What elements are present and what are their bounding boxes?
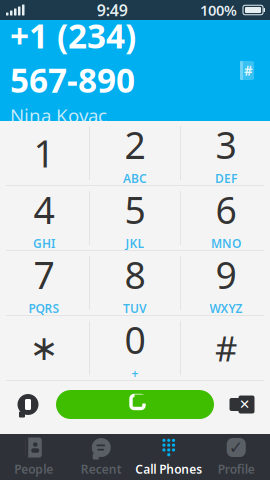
button[interactable]: Contacts — [232, 53, 262, 87]
button[interactable]: People — [0, 434, 67, 480]
staticText: DEF — [215, 170, 237, 186]
staticText: People — [14, 461, 53, 477]
staticText: Profile — [218, 461, 255, 477]
staticText: ∗ — [29, 328, 58, 368]
staticText: 7 — [33, 250, 54, 299]
staticText: GHI — [33, 235, 55, 251]
staticText: Nina Kovac — [10, 103, 107, 128]
button[interactable]: 5 — [90, 186, 180, 250]
button[interactable]: 8 — [90, 251, 180, 315]
staticText: +1 (234) 567-890 — [10, 13, 136, 102]
staticText: Recent — [81, 461, 122, 477]
staticText: 0 — [124, 315, 145, 364]
staticText: + — [131, 365, 138, 381]
button[interactable]: 7 — [0, 251, 89, 315]
button[interactable]: 1 — [0, 121, 89, 185]
staticText: # — [244, 62, 253, 79]
staticText: ✓ — [229, 438, 244, 457]
staticText: 1 — [33, 128, 54, 178]
staticText: 6 — [215, 185, 236, 234]
staticText: 3 — [215, 120, 236, 169]
staticText: 100% — [200, 0, 237, 20]
staticText: WXYZ — [209, 300, 242, 316]
staticText: PQRS — [28, 300, 59, 316]
button[interactable]: ∗ — [0, 316, 89, 380]
button[interactable]: 4 — [0, 186, 89, 250]
button[interactable]: 0 — [90, 316, 180, 380]
staticText: 5 — [124, 185, 145, 234]
staticText: MNO — [211, 235, 241, 251]
button[interactable]: 6 — [181, 186, 270, 250]
button[interactable]: 3 — [181, 121, 270, 185]
staticText: Call Phones — [135, 461, 202, 477]
button[interactable]: 2 — [90, 121, 180, 185]
button[interactable]: Delete — [222, 384, 262, 424]
button[interactable]: Send message — [8, 384, 48, 424]
staticText: TUV — [123, 300, 147, 316]
staticText: 4 — [33, 185, 54, 234]
button[interactable]: ✓ — [202, 434, 270, 480]
button[interactable]: 9 — [181, 251, 270, 315]
staticText: JKL — [125, 235, 144, 251]
staticText: ✕ — [239, 397, 250, 412]
staticText: 9 — [215, 250, 236, 299]
staticText: 9:49 — [97, 0, 128, 21]
button[interactable]: Call — [56, 390, 214, 419]
button[interactable]: Call Phones — [135, 434, 202, 480]
button[interactable]: Recent — [67, 434, 135, 480]
staticText: 2 — [124, 120, 145, 169]
button[interactable]: # — [181, 316, 270, 380]
staticText: # — [215, 325, 237, 371]
staticText: 8 — [124, 250, 145, 299]
staticText: ABC — [123, 170, 147, 186]
